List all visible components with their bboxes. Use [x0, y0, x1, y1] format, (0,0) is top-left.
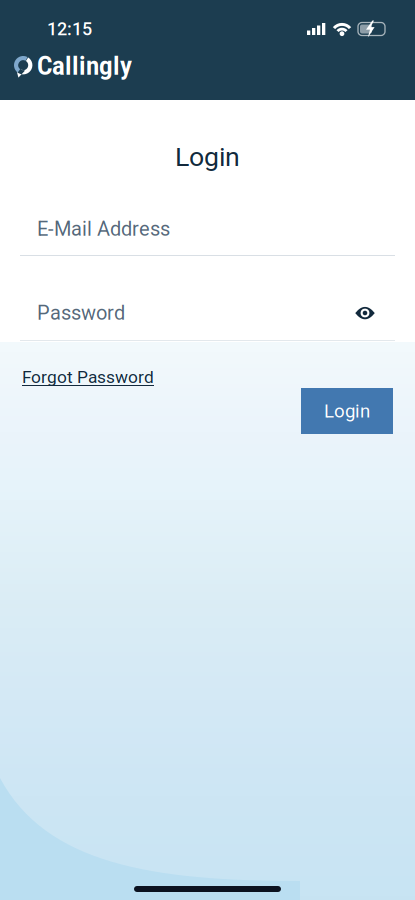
staticText: E-Mail Address [37, 217, 170, 241]
button[interactable]: Login [301, 388, 393, 434]
staticText: Callingly [37, 51, 132, 81]
button[interactable]: Show password [347, 301, 383, 325]
staticText: 12:15 [47, 18, 92, 40]
staticText: Forgot Password [22, 367, 154, 387]
staticText: Login [175, 141, 240, 173]
staticText: Password [37, 301, 125, 325]
button[interactable]: Forgot Password [22, 369, 154, 386]
staticText: Login [324, 400, 370, 422]
